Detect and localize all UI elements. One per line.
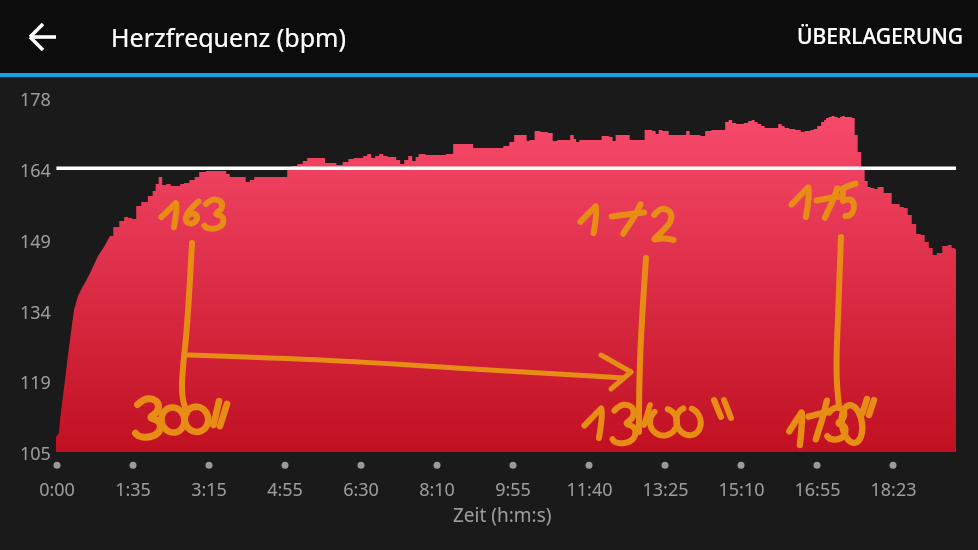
staticText: Zeit (h:m:s) [453,502,552,528]
button[interactable]: ÜBERLAGERUNG [783,0,978,73]
staticText: 105 [20,441,51,466]
staticText: 8:10 [419,477,455,502]
staticText: 164 [20,158,51,183]
staticText: 119 [20,370,51,395]
staticText: 13:25 [642,477,689,502]
staticText: 1:35 [115,477,151,502]
staticText: 18:23 [870,477,917,502]
staticText: 178 [20,87,51,112]
staticText: Herzfrequenz (bpm) [111,20,346,54]
staticText: 134 [20,300,51,325]
staticText: 9:55 [495,477,531,502]
staticText: ÜBERLAGERUNG [797,22,964,51]
staticText: 4:55 [267,477,303,502]
staticText: 3:15 [191,477,227,502]
button[interactable]: Zurück [0,0,111,73]
staticText: 15:10 [718,477,765,502]
staticText: 11:40 [566,477,613,502]
staticText: 6:30 [343,477,379,502]
staticText: 0:00 [39,477,75,502]
staticText: 16:55 [794,477,841,502]
staticText: 149 [20,229,51,254]
